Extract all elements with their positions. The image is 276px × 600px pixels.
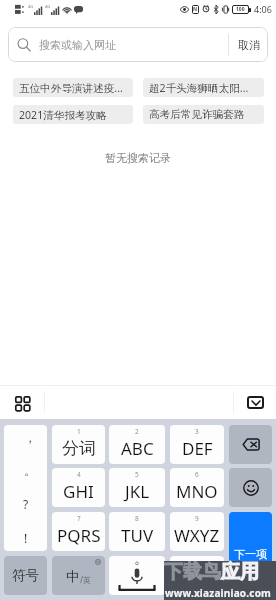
- staticText: 。: [24, 463, 36, 478]
- other: Emoji: [243, 480, 259, 496]
- button[interactable]: [170, 556, 224, 595]
- staticText: 5: [135, 470, 139, 479]
- staticText: ABC: [121, 437, 154, 460]
- staticText: N: [193, 6, 198, 13]
- button[interactable]: 中: [52, 556, 105, 595]
- staticText: 五位中外导演讲述疫...: [19, 81, 123, 95]
- button[interactable]: Hide keyboard: [234, 385, 276, 419]
- staticText: 4G: [28, 4, 34, 9]
- staticText: ，: [24, 430, 36, 445]
- staticText: !: [24, 530, 28, 546]
- other: Backspace: [242, 438, 260, 451]
- staticText: 分词: [62, 438, 96, 459]
- button[interactable]: 3: [170, 425, 224, 464]
- staticText: 8: [135, 514, 139, 523]
- staticText: 1: [77, 427, 81, 436]
- staticText: ?: [23, 496, 29, 512]
- staticText: TUV: [121, 524, 154, 547]
- button[interactable]: 5: [109, 468, 165, 507]
- staticText: 100: [236, 6, 245, 13]
- staticText: 超2千头海狮晒太阳...: [149, 81, 249, 95]
- staticText: 3: [195, 427, 199, 436]
- button[interactable]: 符号: [4, 556, 47, 595]
- button[interactable]: ，: [4, 425, 47, 551]
- staticText: 9: [195, 514, 199, 523]
- button[interactable]: 2021清华报考攻略: [13, 105, 133, 124]
- button[interactable]: 取消: [229, 27, 268, 62]
- button[interactable]: 4: [52, 468, 105, 507]
- staticText: 2: [135, 427, 139, 436]
- button[interactable]: 9: [170, 512, 224, 551]
- staticText: 暂无搜索记录: [105, 151, 171, 165]
- staticText: PQRS: [57, 524, 101, 547]
- staticText: 中: [66, 568, 80, 585]
- button[interactable]: Space and voice input: [109, 556, 165, 595]
- staticText: 4: [77, 470, 81, 479]
- staticText: MNO: [176, 480, 218, 503]
- staticText: 符号: [12, 567, 39, 584]
- button[interactable]: Keyboard menu: [0, 385, 44, 419]
- button[interactable]: 2: [109, 425, 165, 464]
- staticText: 应用: [221, 560, 259, 584]
- button[interactable]: 6: [170, 468, 224, 507]
- button[interactable]: 7: [52, 512, 105, 551]
- button[interactable]: Emoji: [229, 468, 272, 507]
- staticText: 6: [195, 470, 199, 479]
- button[interactable]: 下一项: [229, 512, 272, 595]
- staticText: WXYZ: [174, 524, 220, 547]
- staticText: JKL: [125, 480, 150, 503]
- button[interactable]: 五位中外导演讲述疫...: [13, 78, 133, 97]
- staticText: DEF: [182, 437, 213, 460]
- staticText: 4G: [45, 4, 51, 9]
- staticText: 7: [77, 514, 81, 523]
- staticText: www.xiazainiao.com: [165, 586, 272, 600]
- button[interactable]: 1: [52, 425, 105, 464]
- staticText: 下一项: [234, 547, 267, 561]
- button[interactable]: 超2千头海狮晒太阳...: [143, 78, 264, 97]
- staticText: GHI: [63, 480, 94, 503]
- staticText: 高考后常见诈骗套路: [149, 108, 245, 121]
- staticText: 下载鸟: [164, 560, 221, 584]
- button[interactable]: 8: [109, 512, 165, 551]
- button[interactable]: Backspace: [229, 425, 272, 464]
- staticText: 搜索或输入网址: [39, 38, 228, 52]
- staticText: 4:06: [254, 3, 272, 15]
- staticText: /英: [80, 574, 91, 585]
- staticText: 2021清华报考攻略: [19, 108, 107, 122]
- staticText: 取消: [238, 38, 260, 52]
- button[interactable]: 高考后常见诈骗套路: [143, 105, 264, 124]
